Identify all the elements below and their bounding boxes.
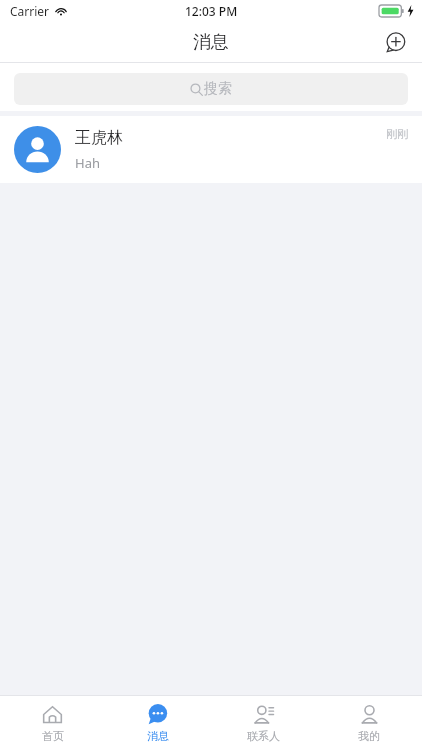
staticText: 搜索 — [204, 80, 232, 98]
staticText: Carrier — [10, 3, 50, 19]
button[interactable]: New message — [380, 27, 410, 57]
staticText: 刚刚 — [386, 127, 408, 141]
button[interactable]: 联系人 — [210, 696, 316, 750]
button[interactable]: 我的 — [316, 696, 422, 750]
staticText: 首页 — [42, 729, 64, 743]
staticText: 王虎林 — [75, 128, 123, 148]
staticText: 消息 — [193, 31, 229, 54]
button[interactable]: 首页 — [0, 696, 105, 750]
staticText: Hah — [75, 154, 100, 172]
button[interactable]: 王虎林 — [0, 116, 422, 183]
button[interactable]: 搜索 — [14, 73, 408, 105]
staticText: 消息 — [147, 729, 169, 743]
staticText: 12:03 PM — [185, 3, 238, 19]
staticText: 我的 — [358, 729, 380, 743]
staticText: 联系人 — [247, 729, 280, 743]
button[interactable]: 消息 — [105, 696, 210, 750]
